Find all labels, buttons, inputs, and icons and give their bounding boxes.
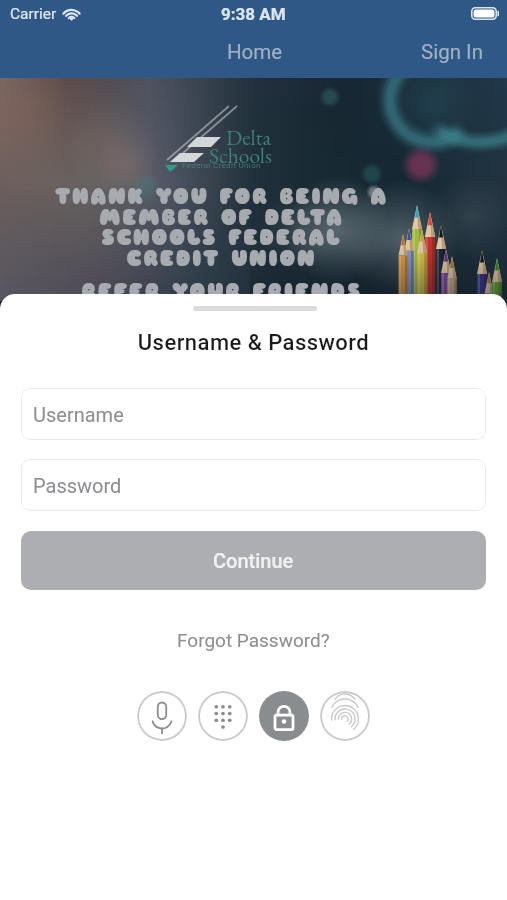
staticText: CREDIT UNION <box>0 245 475 272</box>
button[interactable]: Forgot Password? <box>0 629 507 651</box>
staticText: Delta <box>226 123 272 151</box>
staticText: Username & Password <box>0 330 507 356</box>
staticText: Carrier <box>10 5 57 23</box>
staticText: Schools <box>209 141 272 169</box>
staticText: MEMBER OF DELTA <box>0 204 475 231</box>
button[interactable]: PIN login <box>198 691 248 741</box>
button[interactable]: Continue <box>21 531 486 590</box>
staticText: Home <box>227 40 283 64</box>
button[interactable]: Fingerprint login <box>320 691 370 741</box>
staticText: 9:38 AM <box>221 4 286 24</box>
staticText: Username <box>33 403 124 426</box>
staticText: Continue <box>213 549 294 572</box>
button[interactable]: Voice login <box>137 691 187 741</box>
button[interactable]: Password login <box>259 691 309 741</box>
staticText: Sign In <box>421 40 483 64</box>
staticText: Password <box>33 474 122 497</box>
staticText: Federal Credit Union <box>182 161 261 170</box>
button[interactable]: Username <box>21 388 486 440</box>
button[interactable]: Sign In <box>413 34 491 70</box>
button[interactable]: Password <box>21 459 486 511</box>
staticText: Forgot Password? <box>177 629 330 651</box>
staticText: REFER YOUR FRIENDS <box>0 278 475 305</box>
button[interactable]: Home <box>219 34 291 70</box>
staticText: SCHOOLS FEDERAL <box>0 224 475 251</box>
staticText: THANK YOU FOR BEING A <box>0 183 475 210</box>
